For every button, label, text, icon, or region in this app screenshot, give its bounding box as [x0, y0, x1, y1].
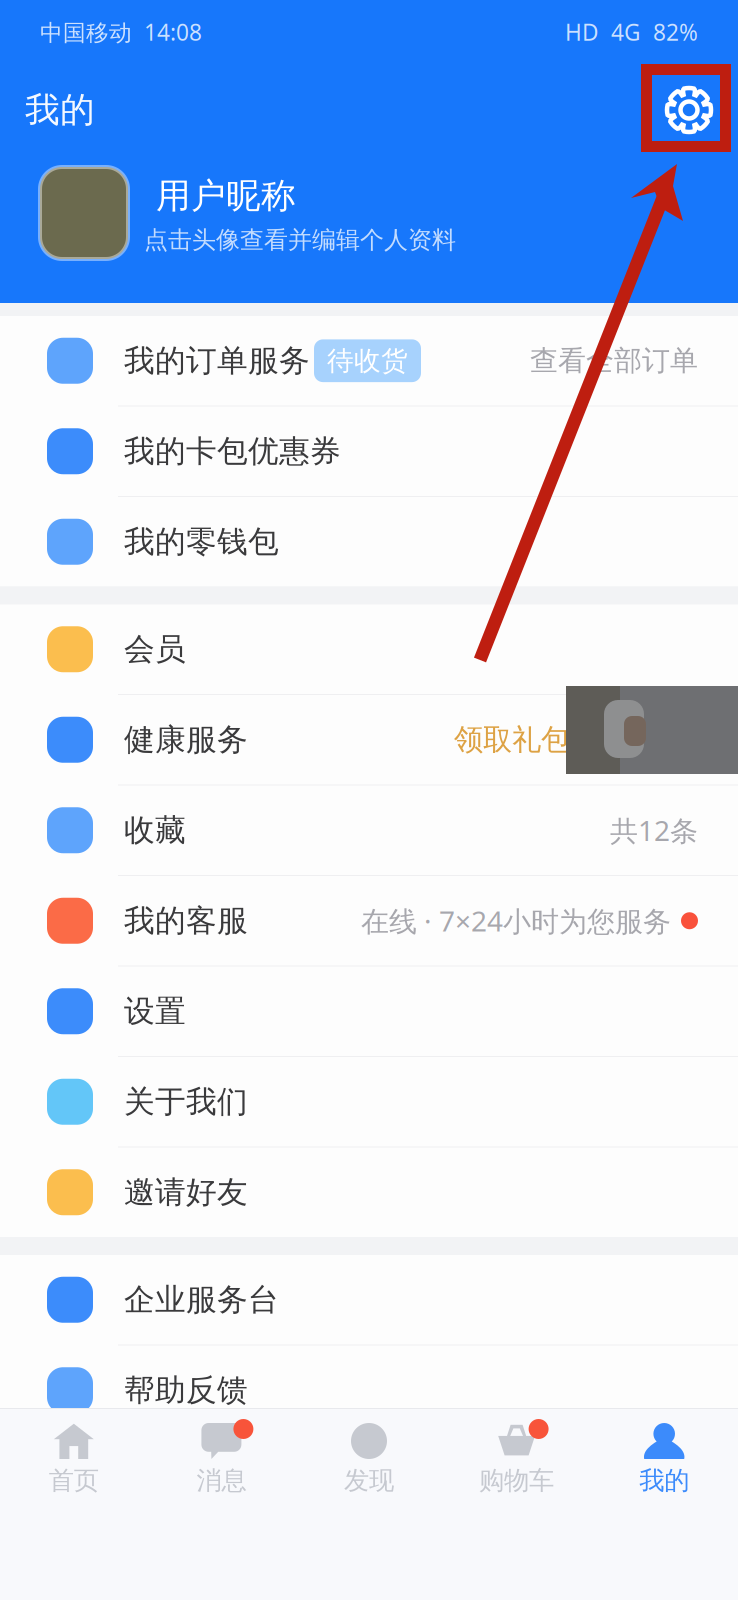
staticText: 我的卡包优惠券	[124, 432, 341, 470]
staticText: 我的订单服务	[124, 342, 310, 380]
button[interactable]: 购物车	[443, 1409, 590, 1600]
button[interactable]: 我的零钱包	[0, 497, 738, 586]
button[interactable]: Settings	[651, 72, 727, 148]
staticText: 共12条	[610, 812, 698, 849]
staticText: 待收货	[327, 344, 408, 377]
staticText: 会员	[124, 630, 186, 668]
button[interactable]: 关于我们	[0, 1057, 738, 1147]
button[interactable]: 消息	[148, 1409, 295, 1600]
staticText: 帮助反馈	[124, 1371, 248, 1409]
button[interactable]: 企业服务台	[0, 1255, 738, 1345]
button[interactable]: 设置	[0, 966, 738, 1057]
staticText: 我的零钱包	[124, 523, 279, 561]
button[interactable]: 我的卡包优惠券	[0, 406, 738, 497]
staticText: 企业服务台	[124, 1281, 279, 1319]
staticText: HD 4G 82%	[565, 17, 698, 47]
staticText: 在线 · 7×24小时为您服务	[361, 902, 671, 939]
staticText: 购物车	[479, 1465, 554, 1496]
staticText: 点击头像查看并编辑个人资料	[144, 225, 456, 255]
button[interactable]: 我的客服	[0, 876, 738, 966]
button[interactable]: 收藏	[0, 785, 738, 876]
button[interactable]: 我的订单服务	[0, 316, 738, 406]
staticText: 中国移动 14:08	[40, 17, 202, 47]
staticText: 用户昵称	[156, 175, 296, 217]
staticText: 我的	[639, 1465, 689, 1496]
staticText: 我的客服	[124, 902, 248, 940]
staticText: 邀请好友	[124, 1173, 248, 1211]
button[interactable]: 首页	[0, 1409, 148, 1600]
staticText: 我的	[25, 89, 95, 131]
staticText: 健康服务	[124, 721, 248, 759]
staticText: 发现	[344, 1465, 394, 1496]
button[interactable]: 邀请好友	[0, 1147, 738, 1237]
button[interactable]: 帮助反馈	[0, 1345, 738, 1435]
button[interactable]: 会员	[0, 604, 738, 695]
staticText: 消息	[196, 1465, 246, 1496]
button[interactable]: 健康服务	[0, 695, 738, 785]
staticText: 查看全部订单	[530, 344, 698, 378]
button[interactable]: 我的	[590, 1409, 738, 1600]
staticText: 首页	[49, 1465, 99, 1496]
button[interactable]: 发现	[295, 1409, 443, 1600]
staticText: 设置	[124, 992, 186, 1030]
staticText: 领取礼包	[454, 722, 570, 758]
staticText: 收藏	[124, 811, 186, 849]
staticText: 关于我们	[124, 1083, 248, 1121]
